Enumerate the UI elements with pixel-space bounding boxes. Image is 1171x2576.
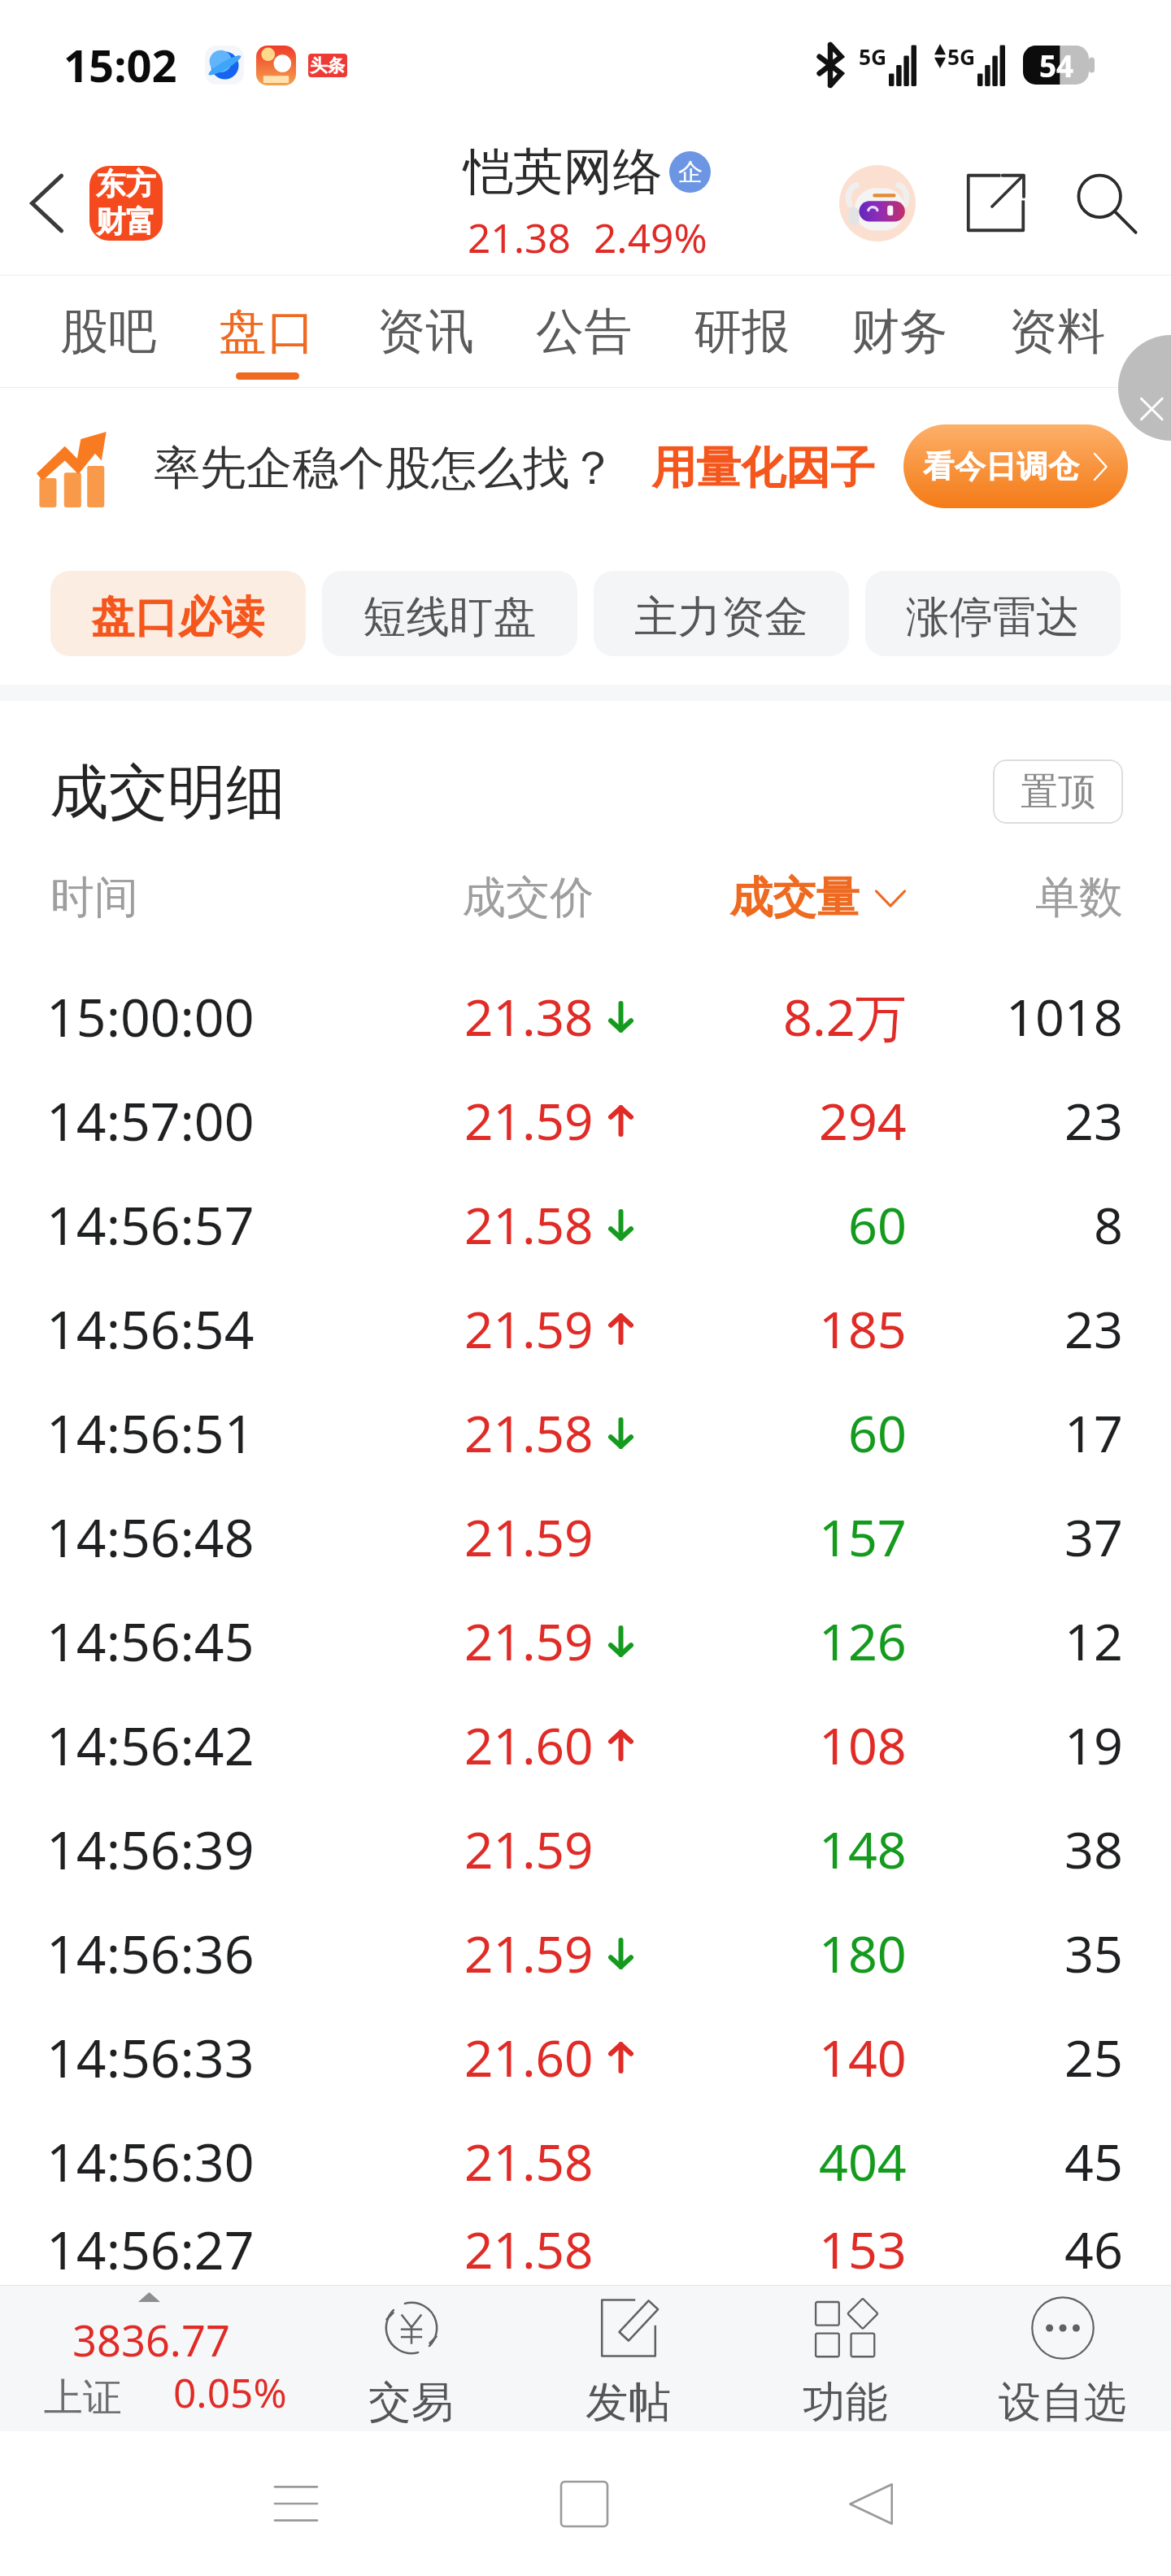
staticText: 单数: [1035, 870, 1123, 925]
staticText: 21.59: [464, 1815, 594, 1883]
staticText: 8: [1094, 1190, 1123, 1260]
staticText: 60: [848, 1398, 907, 1468]
staticText: 140: [819, 2022, 907, 2092]
staticText: 126: [819, 1606, 907, 1676]
button[interactable]: Search: [1049, 130, 1163, 276]
staticText: 21.58: [464, 1399, 594, 1467]
staticText: 成交明细: [50, 755, 285, 829]
staticText: 时间: [50, 870, 138, 925]
staticText: 21.60: [464, 1711, 594, 1779]
button[interactable]: 14:56:51: [0, 1381, 1171, 1485]
button[interactable]: Recent apps: [254, 2461, 338, 2546]
button[interactable]: 14:56:30: [0, 2109, 1171, 2213]
button[interactable]: 14:56:33: [0, 2005, 1171, 2109]
staticText: 14:56:54: [46, 1293, 255, 1364]
button[interactable]: 14:56:27: [0, 2213, 1171, 2285]
button[interactable]: AI assistant: [813, 130, 942, 276]
button[interactable]: 盘口: [188, 276, 346, 388]
button[interactable]: 14:56:42: [0, 1693, 1171, 1797]
staticText: 企: [678, 157, 703, 188]
staticText: 21.38: [468, 210, 571, 265]
button[interactable]: 置顶: [993, 759, 1123, 824]
staticText: 21.59: [464, 1919, 594, 1987]
button[interactable]: 15:00:00: [0, 964, 1171, 1068]
staticText: 2.49%: [594, 210, 707, 265]
staticText: 15:02: [63, 35, 177, 95]
button[interactable]: Back: [0, 130, 94, 276]
staticText: 功能: [803, 2376, 888, 2430]
button[interactable]: 财务: [821, 276, 978, 388]
button[interactable]: 功能: [737, 2285, 954, 2431]
staticText: 21.60: [464, 2023, 594, 2091]
staticText: 资讯: [377, 302, 474, 363]
staticText: 公告: [536, 302, 633, 363]
staticText: 置顶: [1021, 768, 1095, 816]
staticText: 404: [819, 2126, 907, 2196]
staticText: 14:56:36: [46, 1917, 255, 1989]
button[interactable]: Close advertisement: [1118, 388, 1171, 441]
staticText: 15:00:00: [46, 981, 255, 1052]
button[interactable]: 盘口必读: [50, 571, 306, 656]
button[interactable]: 14:56:45: [0, 1589, 1171, 1693]
button[interactable]: 设自选: [954, 2285, 1171, 2431]
staticText: 180: [819, 1918, 907, 1988]
button[interactable]: 14:56:54: [0, 1277, 1171, 1381]
staticText: 60: [848, 1190, 907, 1260]
button[interactable]: 看今日调仓: [903, 424, 1128, 508]
button[interactable]: 短线盯盘: [322, 571, 577, 656]
button[interactable]: 14:56:48: [0, 1485, 1171, 1589]
staticText: 发帖: [585, 2376, 671, 2430]
staticText: 5G: [859, 42, 887, 72]
staticText: 短线盯盘: [363, 590, 537, 645]
staticText: 成交价: [462, 870, 594, 925]
staticText: 14:56:42: [46, 1709, 255, 1781]
staticText: 用量化因子: [651, 440, 875, 496]
button[interactable]: 东方: [89, 166, 163, 241]
staticText: 54: [1039, 46, 1074, 85]
staticText: 恺英网络: [464, 141, 663, 203]
button[interactable]: Home: [542, 2461, 626, 2546]
button[interactable]: 成交量: [729, 861, 907, 935]
staticText: 108: [819, 1710, 907, 1780]
staticText: 14:57:00: [46, 1085, 255, 1156]
staticText: 14:56:33: [46, 2021, 255, 2093]
staticText: 38: [1064, 1814, 1123, 1884]
button[interactable]: 交易: [302, 2285, 520, 2431]
staticText: 头条: [310, 54, 346, 76]
staticText: 8.2万: [783, 981, 907, 1051]
staticText: 35: [1064, 1918, 1123, 1988]
staticText: 财务: [851, 302, 948, 363]
staticText: 看今日调仓: [923, 447, 1079, 486]
button[interactable]: 资料: [978, 276, 1136, 388]
staticText: 21.58: [464, 2215, 594, 2283]
staticText: 23: [1064, 1294, 1123, 1364]
staticText: 3836.77: [72, 2311, 230, 2369]
button[interactable]: 公告: [505, 276, 663, 388]
button[interactable]: 涨停雷达: [865, 571, 1121, 656]
button[interactable]: Back: [828, 2461, 912, 2546]
button[interactable]: 发帖: [520, 2285, 737, 2431]
button[interactable]: 3836.77: [0, 2285, 302, 2431]
button[interactable]: 14:56:39: [0, 1797, 1171, 1901]
staticText: 17: [1064, 1398, 1123, 1468]
staticText: 研报: [694, 302, 790, 363]
staticText: 14:56:51: [46, 1397, 255, 1469]
button[interactable]: 14:56:57: [0, 1173, 1171, 1277]
staticText: 0.05%: [173, 2365, 287, 2420]
staticText: 财富: [96, 203, 156, 241]
button[interactable]: 股吧: [29, 276, 188, 388]
button[interactable]: 主力资金: [594, 571, 849, 656]
button[interactable]: 14:57:00: [0, 1068, 1171, 1173]
staticText: 153: [819, 2214, 907, 2284]
button[interactable]: 研报: [663, 276, 821, 388]
button[interactable]: Share: [942, 130, 1049, 276]
staticText: 37: [1064, 1502, 1123, 1572]
staticText: 21.58: [464, 2127, 594, 2195]
button[interactable]: 14:56:36: [0, 1901, 1171, 2005]
staticText: 21.59: [464, 1607, 594, 1675]
staticText: 21.38: [464, 982, 594, 1051]
button[interactable]: 资讯: [346, 276, 505, 388]
staticText: 12: [1064, 1606, 1123, 1676]
staticText: 东方: [96, 166, 156, 203]
staticText: 14:56:27: [46, 2213, 255, 2285]
